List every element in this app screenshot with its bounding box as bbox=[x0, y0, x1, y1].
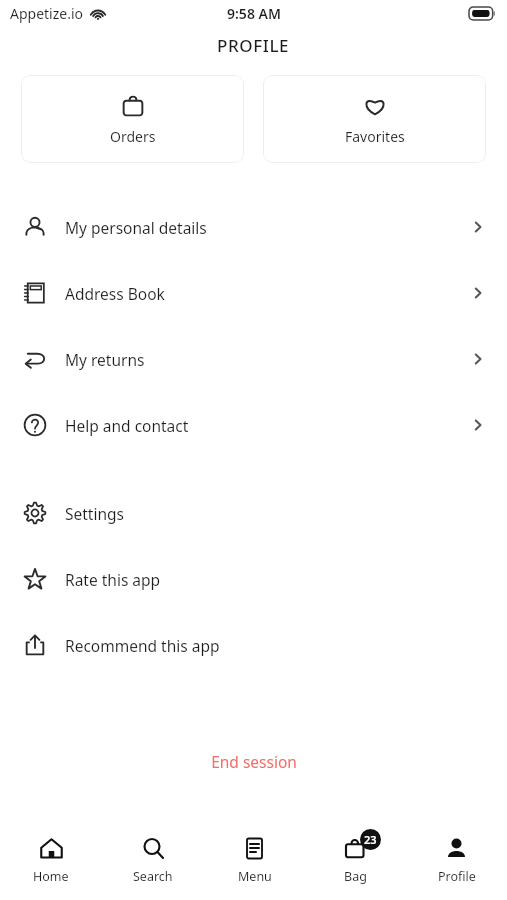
staticText: Bag bbox=[344, 868, 367, 885]
button[interactable]: Profile bbox=[406, 829, 507, 891]
button[interactable]: Settings bbox=[0, 480, 507, 546]
staticText: Appetize.io bbox=[10, 4, 84, 23]
button[interactable]: 23 bbox=[305, 829, 406, 891]
staticText: Profile bbox=[438, 868, 476, 885]
button[interactable]: Address Book bbox=[0, 260, 507, 326]
button[interactable]: My personal details bbox=[0, 194, 507, 260]
staticText: Settings bbox=[65, 503, 485, 524]
button[interactable]: Search bbox=[102, 829, 204, 891]
button[interactable]: End session bbox=[199, 745, 309, 778]
button[interactable]: Rate this app bbox=[0, 546, 507, 612]
staticText: PROFILE bbox=[217, 34, 290, 57]
staticText: Home bbox=[33, 868, 69, 885]
button[interactable]: Orders bbox=[21, 75, 244, 163]
staticText: My personal details bbox=[65, 217, 471, 238]
staticText: Search bbox=[133, 868, 173, 885]
staticText: 9:58 AM bbox=[227, 4, 281, 23]
button[interactable]: Home bbox=[0, 829, 102, 891]
staticText: My returns bbox=[65, 349, 471, 370]
staticText: Orders bbox=[110, 127, 156, 146]
staticText: Favorites bbox=[345, 127, 405, 146]
staticText: End session bbox=[211, 751, 297, 772]
button[interactable]: Recommend this app bbox=[0, 612, 507, 678]
button[interactable]: Menu bbox=[204, 829, 305, 891]
staticText: Address Book bbox=[65, 283, 471, 304]
staticText: Rate this app bbox=[65, 569, 485, 590]
staticText: Recommend this app bbox=[65, 635, 485, 656]
staticText: Menu bbox=[238, 868, 272, 885]
button[interactable]: My returns bbox=[0, 326, 507, 392]
button[interactable]: Favorites bbox=[263, 75, 486, 163]
button[interactable]: Help and contact bbox=[0, 392, 507, 458]
staticText: 23 bbox=[364, 832, 377, 847]
staticText: Help and contact bbox=[65, 415, 471, 436]
